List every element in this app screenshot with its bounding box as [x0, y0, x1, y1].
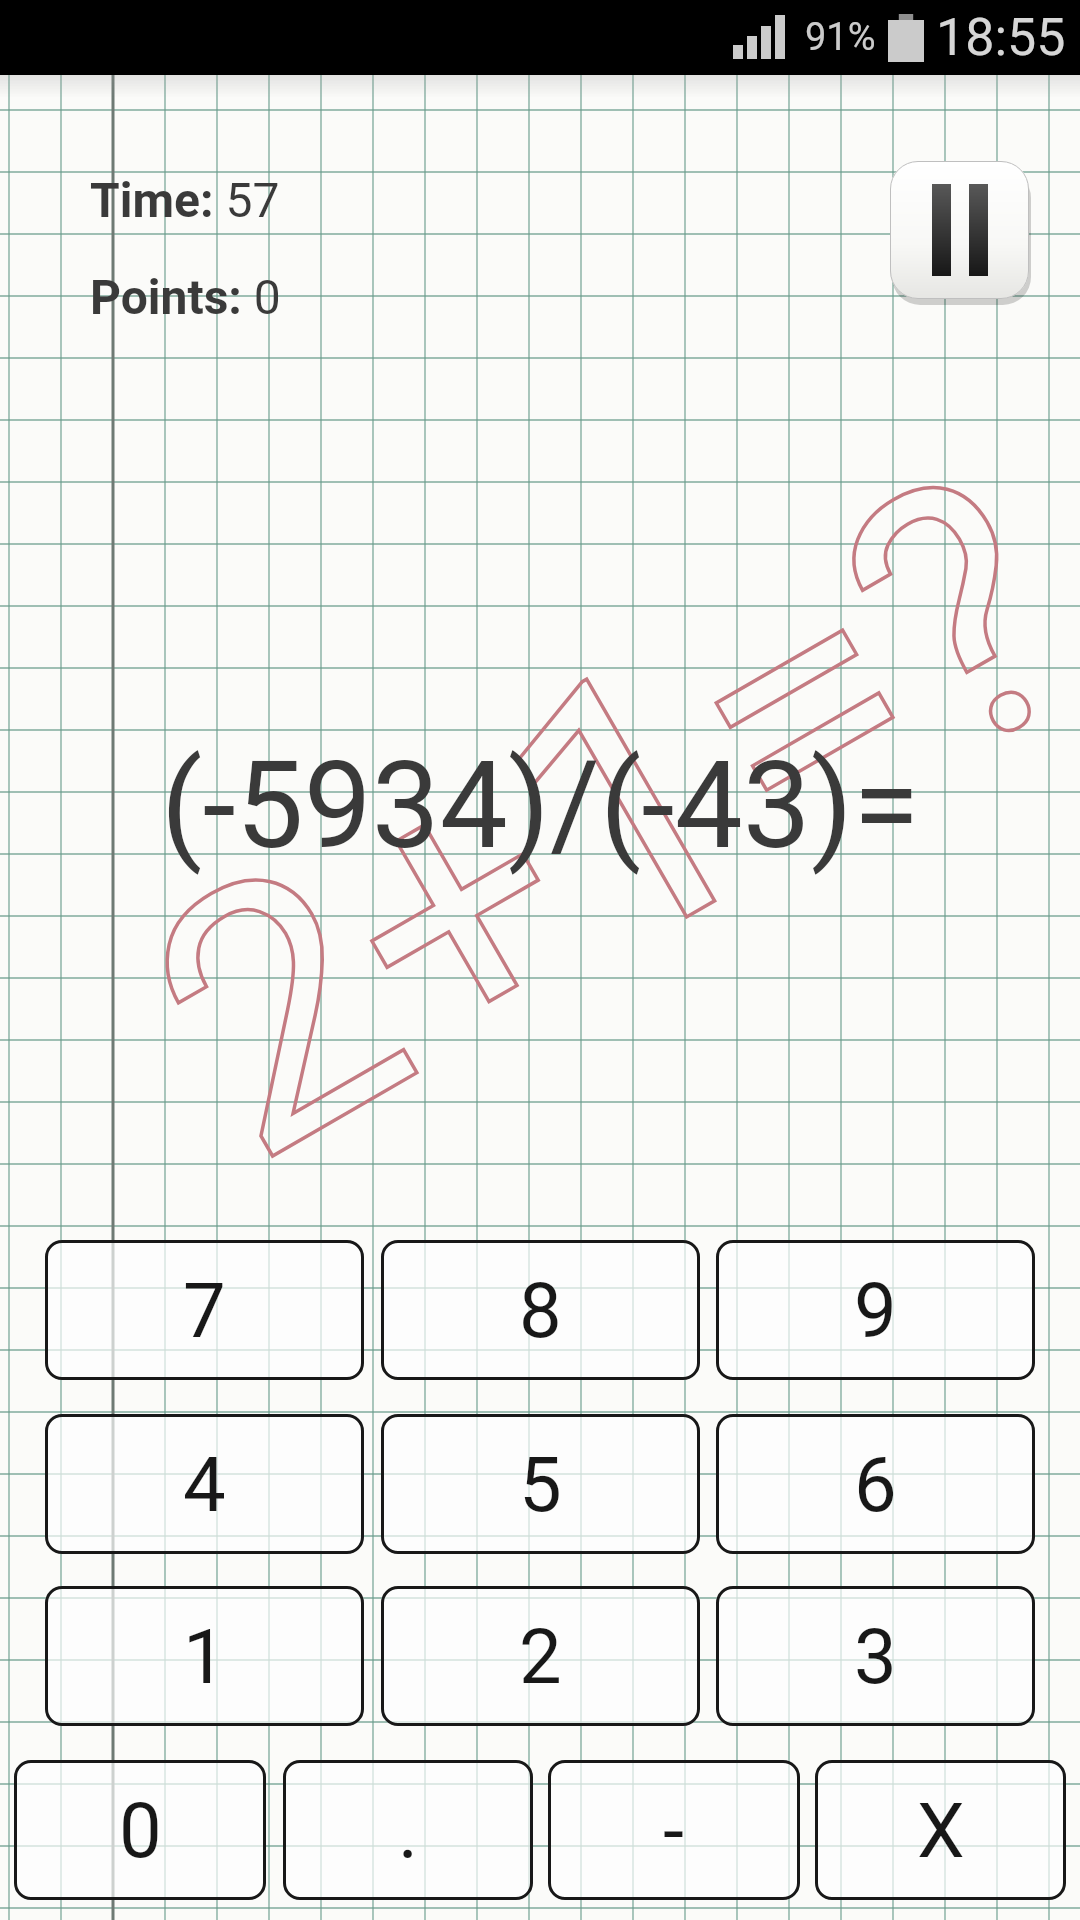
button[interactable]: -	[548, 1760, 800, 1900]
button[interactable]: X	[815, 1760, 1066, 1900]
button[interactable]: 6	[716, 1414, 1035, 1554]
staticText: 2	[519, 1612, 562, 1701]
button[interactable]: .	[283, 1760, 533, 1900]
staticText: 3	[854, 1612, 897, 1701]
staticText: 9	[854, 1266, 897, 1355]
staticText: (-5934)/(-43)=	[161, 735, 920, 877]
button[interactable]: 4	[45, 1414, 364, 1554]
staticText: -	[663, 1786, 685, 1875]
staticText: 18:55	[936, 7, 1066, 68]
button[interactable]: 1	[45, 1586, 364, 1726]
staticText: 7	[183, 1266, 226, 1355]
staticText: X	[917, 1786, 965, 1875]
button[interactable]: 9	[716, 1240, 1035, 1380]
button[interactable]: 8	[381, 1240, 700, 1380]
staticText: Time: 57	[90, 172, 280, 228]
staticText: 4	[183, 1440, 226, 1529]
button[interactable]: 5	[381, 1414, 700, 1554]
staticText: 1	[183, 1612, 226, 1701]
button[interactable]: 7	[45, 1240, 364, 1380]
staticText: 6	[854, 1440, 897, 1529]
staticText: 0	[119, 1786, 162, 1875]
staticText: 5	[519, 1440, 562, 1529]
button[interactable]: 0	[14, 1760, 266, 1900]
button[interactable]: 2	[381, 1586, 700, 1726]
staticText: 91%	[805, 15, 876, 60]
staticText: 8	[519, 1266, 562, 1355]
button[interactable]	[890, 161, 1029, 299]
button[interactable]: 3	[716, 1586, 1035, 1726]
staticText: Points: 0	[90, 269, 281, 325]
staticText: .	[398, 1786, 419, 1875]
